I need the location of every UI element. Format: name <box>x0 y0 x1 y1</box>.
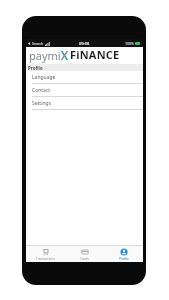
staticText: Language <box>32 74 56 81</box>
staticText: Contact <box>32 87 51 94</box>
staticText: paymi <box>29 48 61 63</box>
staticText: Profile <box>28 65 43 71</box>
button[interactable]: Transactions <box>26 246 65 262</box>
staticText: FiNANCE <box>70 47 120 62</box>
staticText: Search <box>32 41 44 46</box>
staticText: 09:08 <box>79 41 90 46</box>
staticText: Profile <box>119 257 129 261</box>
button[interactable]: Profile <box>104 246 143 262</box>
button[interactable]: Contact <box>26 84 143 96</box>
button[interactable]: Cards <box>65 246 104 262</box>
staticText: Transactions <box>36 257 55 261</box>
staticText: Finance Incorporated Limited <box>70 62 117 64</box>
button[interactable]: Settings <box>26 97 143 109</box>
staticText: Settings <box>32 100 52 107</box>
staticText: Cards <box>80 257 89 261</box>
button[interactable]: Language <box>26 71 143 83</box>
staticText: 100% <box>125 41 134 46</box>
